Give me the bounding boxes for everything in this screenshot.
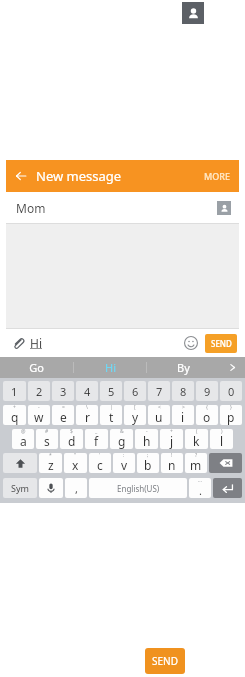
button[interactable]: Navigate up [6,160,36,192]
button[interactable]: Add recipient [217,201,231,215]
staticText: ? [195,453,198,459]
staticText: > [182,405,185,411]
button[interactable]: ( [185,429,208,449]
staticText: q [11,409,19,425]
button[interactable]: SEND [145,648,185,674]
staticText: _ [95,429,98,435]
button[interactable]: [ [124,405,146,425]
button[interactable]: - [28,405,50,425]
staticText: ( [196,429,198,435]
button[interactable]: 8 [172,381,194,401]
staticText: m [190,457,202,473]
button[interactable]: Go [0,357,73,378]
button[interactable]: English(US) [89,478,187,498]
button[interactable]: Voice input [39,478,63,498]
button[interactable]: @ [12,429,34,449]
button[interactable]: + [160,429,183,449]
button[interactable]: 1 [3,381,26,401]
staticText: + [170,429,173,435]
button[interactable]: > [172,405,194,425]
staticText: r [85,409,90,425]
button[interactable]: " [64,453,87,473]
button[interactable]: Emoji [180,332,202,354]
button[interactable]: \ [76,405,98,425]
staticText: | [110,405,113,411]
staticText: < [158,405,161,411]
staticText: d [68,433,76,449]
staticText: By [177,360,190,375]
staticText: : [123,453,125,459]
staticText: - [146,429,148,435]
staticText: j [170,433,174,449]
button[interactable]: 7 [148,381,170,401]
button[interactable]: Contact [182,2,204,24]
staticText: 2 [36,384,43,399]
button[interactable]: { [196,405,218,425]
button[interactable]: # [36,429,58,449]
button[interactable]: 0 [220,381,242,401]
staticText: MORE [204,170,231,182]
button[interactable]: - [135,429,158,449]
staticText: New message [36,167,122,185]
button[interactable]: ; [137,453,159,473]
button[interactable]: SEND [205,334,237,353]
button[interactable]: More suggestions [219,357,245,378]
staticText: = [62,405,65,411]
staticText: 8 [180,384,187,399]
button[interactable]: By [147,357,219,378]
staticText: e [60,409,67,425]
staticText: a [20,433,27,449]
button[interactable]: Backspace [209,453,242,473]
button[interactable]: _ [85,429,108,449]
button[interactable]: + [3,405,26,425]
button[interactable]: MORE [196,160,239,192]
button[interactable]: ... [189,478,211,498]
staticText: 4 [84,384,91,399]
staticText: g [118,433,126,449]
staticText: s [44,433,50,449]
button[interactable]: , [65,478,87,498]
button[interactable]: : [113,453,135,473]
button[interactable]: Enter [213,478,242,498]
button[interactable]: ! [161,453,183,473]
button[interactable]: ? [185,453,207,473]
button[interactable]: ) [210,429,233,449]
button[interactable]: Shift [3,453,37,473]
staticText: 3 [60,384,67,399]
staticText: u [155,409,163,425]
button[interactable]: < [148,405,170,425]
staticText: ) [221,429,223,435]
button[interactable]: 4 [76,381,98,401]
staticText: English(US) [117,483,160,494]
staticText: & [120,429,124,435]
staticText: 9 [204,384,211,399]
button[interactable]: 2 [28,381,50,401]
button[interactable]: $ [60,429,83,449]
button[interactable]: } [220,405,242,425]
button[interactable]: 6 [124,381,146,401]
staticText: f [94,433,99,449]
button[interactable]: = [52,405,74,425]
staticText: k [193,433,200,449]
staticText: Sym [11,482,29,494]
staticText: l [220,433,224,449]
button[interactable]: Hi [74,357,146,378]
staticText: y [132,409,139,425]
button[interactable]: 3 [52,381,74,401]
staticText: 0 [228,384,235,399]
staticText: v [121,457,128,473]
staticText: Mom [16,200,46,216]
staticText: z [48,457,54,473]
button[interactable]: ' [89,453,111,473]
button[interactable]: Sym [3,478,37,498]
button[interactable]: | [100,405,122,425]
button[interactable]: 9 [196,381,218,401]
button[interactable]: Attach [6,329,30,357]
button[interactable]: * [39,453,62,473]
staticText: n [168,457,176,473]
staticText: @ [21,429,26,435]
button[interactable]: 5 [100,381,122,401]
staticText: 7 [156,384,163,399]
button[interactable]: & [110,429,133,449]
staticText: } [230,405,232,411]
